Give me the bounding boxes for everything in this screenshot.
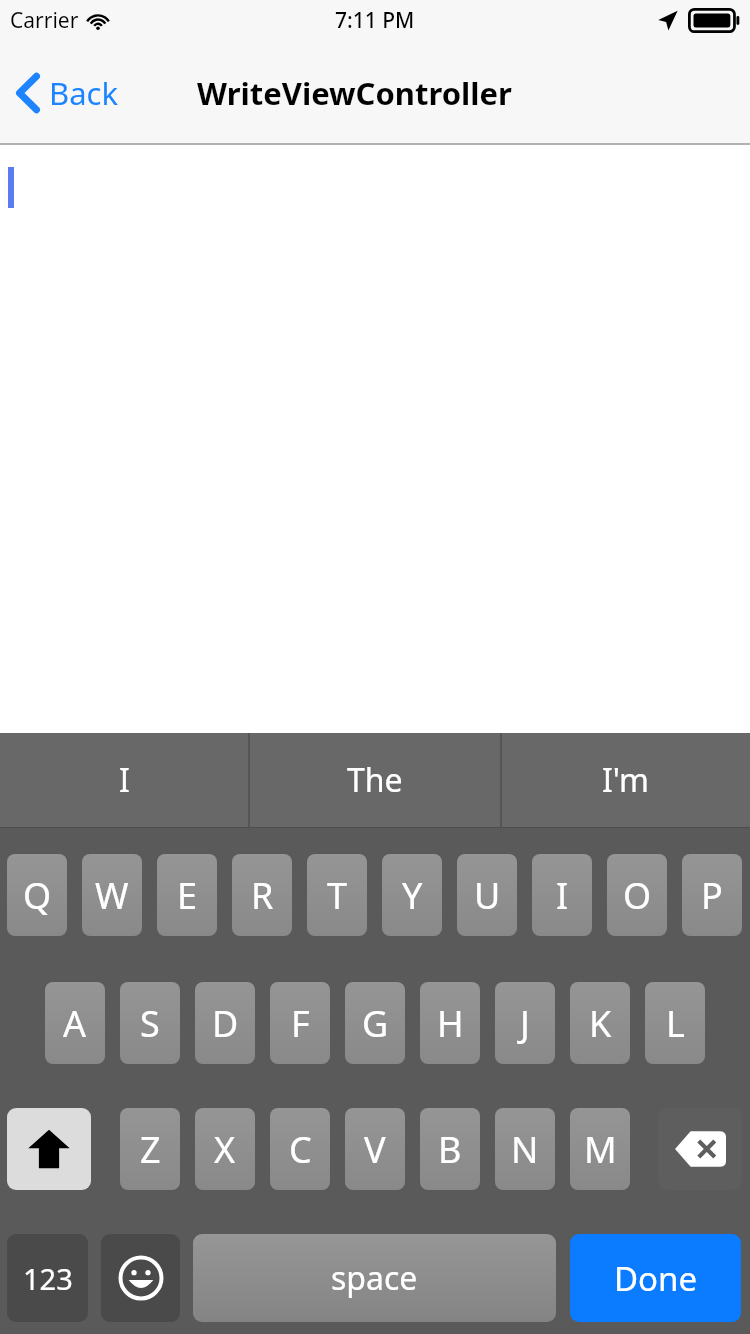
staticText: WriteViewController — [197, 72, 512, 114]
button[interactable]: F — [270, 982, 330, 1064]
button[interactable]: I — [532, 854, 592, 936]
staticText: The — [347, 758, 403, 802]
staticText: I — [119, 758, 130, 802]
staticText: E — [177, 871, 198, 920]
staticText: Y — [402, 871, 423, 920]
button[interactable]: L — [645, 982, 705, 1064]
button[interactable]: The — [250, 733, 500, 827]
button[interactable]: I'm — [502, 733, 750, 827]
staticText: W — [95, 871, 129, 920]
button[interactable]: K — [570, 982, 630, 1064]
staticText: F — [291, 999, 310, 1048]
button[interactable]: C — [270, 1108, 330, 1190]
staticText: V — [364, 1125, 386, 1174]
button[interactable]: U — [457, 854, 517, 936]
button[interactable]: H — [420, 982, 480, 1064]
staticText: H — [437, 999, 464, 1048]
button[interactable]: N — [495, 1108, 555, 1190]
staticText: I — [556, 871, 569, 920]
staticText: Back — [49, 72, 118, 114]
staticText: D — [212, 999, 239, 1048]
staticText: space — [331, 1256, 418, 1300]
button[interactable]: X — [195, 1108, 255, 1190]
button[interactable]: R — [232, 854, 292, 936]
staticText: P — [701, 871, 723, 920]
staticText: 7:11 PM — [335, 6, 415, 35]
button[interactable]: Done — [570, 1234, 741, 1322]
button[interactable]: Emoji keyboard — [101, 1234, 180, 1322]
button[interactable]: W — [82, 854, 142, 936]
button[interactable]: E — [157, 854, 217, 936]
staticText: A — [63, 999, 87, 1048]
staticText: O — [623, 871, 652, 920]
staticText: R — [251, 871, 274, 920]
button[interactable]: T — [307, 854, 367, 936]
button[interactable]: Shift — [7, 1108, 91, 1190]
staticText: I'm — [602, 758, 650, 802]
staticText: X — [214, 1125, 236, 1174]
staticText: Z — [140, 1125, 161, 1174]
button[interactable]: Z — [120, 1108, 180, 1190]
staticText: T — [327, 871, 348, 920]
button[interactable]: Q — [7, 854, 67, 936]
staticText: B — [438, 1125, 462, 1174]
button[interactable]: 123 — [7, 1234, 88, 1322]
button[interactable] — [0, 145, 750, 733]
button[interactable]: O — [607, 854, 667, 936]
button[interactable]: G — [345, 982, 405, 1064]
staticText: Q — [23, 871, 52, 920]
button[interactable]: Back — [8, 62, 126, 124]
button[interactable]: Backspace — [658, 1108, 742, 1190]
button[interactable]: S — [120, 982, 180, 1064]
staticText: N — [511, 1125, 539, 1174]
button[interactable]: B — [420, 1108, 480, 1190]
staticText: Done — [614, 1256, 698, 1301]
button[interactable]: D — [195, 982, 255, 1064]
staticText: M — [584, 1125, 617, 1174]
button[interactable]: V — [345, 1108, 405, 1190]
button[interactable]: M — [570, 1108, 630, 1190]
button[interactable]: J — [495, 982, 555, 1064]
button[interactable]: space — [193, 1234, 556, 1322]
button[interactable]: P — [682, 854, 742, 936]
staticText: S — [140, 999, 160, 1048]
staticText: L — [666, 999, 685, 1048]
staticText: J — [520, 999, 530, 1048]
staticText: G — [362, 999, 389, 1048]
button[interactable]: A — [45, 982, 105, 1064]
staticText: C — [289, 1125, 312, 1174]
staticText: U — [474, 871, 501, 920]
staticText: Carrier — [10, 6, 79, 35]
staticText: 123 — [23, 1259, 73, 1298]
button[interactable]: Y — [382, 854, 442, 936]
button[interactable]: I — [0, 733, 248, 827]
staticText: K — [589, 999, 612, 1048]
